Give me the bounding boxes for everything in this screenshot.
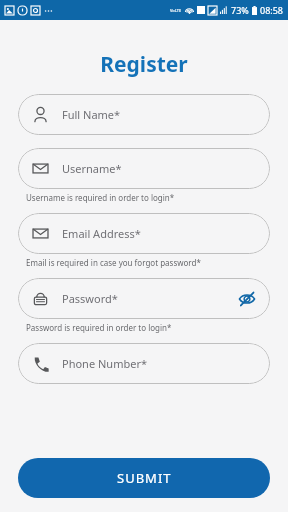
staticText: 73% [231,4,249,16]
button[interactable]: Password* [18,278,270,319]
button[interactable]: Email Address* [18,213,270,254]
staticText: Username is required in order to login* [26,192,175,203]
button[interactable]: Toggle password visibility [238,290,256,308]
button[interactable]: Phone Number* [18,343,270,384]
staticText: Full Name* [62,107,256,122]
staticText: Username* [62,161,256,176]
staticText: Email Address* [62,226,256,241]
staticText: 08:58 [260,4,284,16]
button[interactable]: SUBMIT [18,458,270,498]
staticText: Password is required in order to login* [26,322,172,333]
button[interactable]: Full Name* [18,94,270,135]
staticText: Phone Number* [62,356,256,371]
staticText: Register [0,50,288,79]
staticText: SUBMIT [117,469,172,487]
staticText: VoLTE [170,8,182,13]
staticText: Email is required in case you forgot pas… [26,257,201,268]
staticText: Password* [62,291,238,306]
button[interactable]: Username* [18,148,270,189]
